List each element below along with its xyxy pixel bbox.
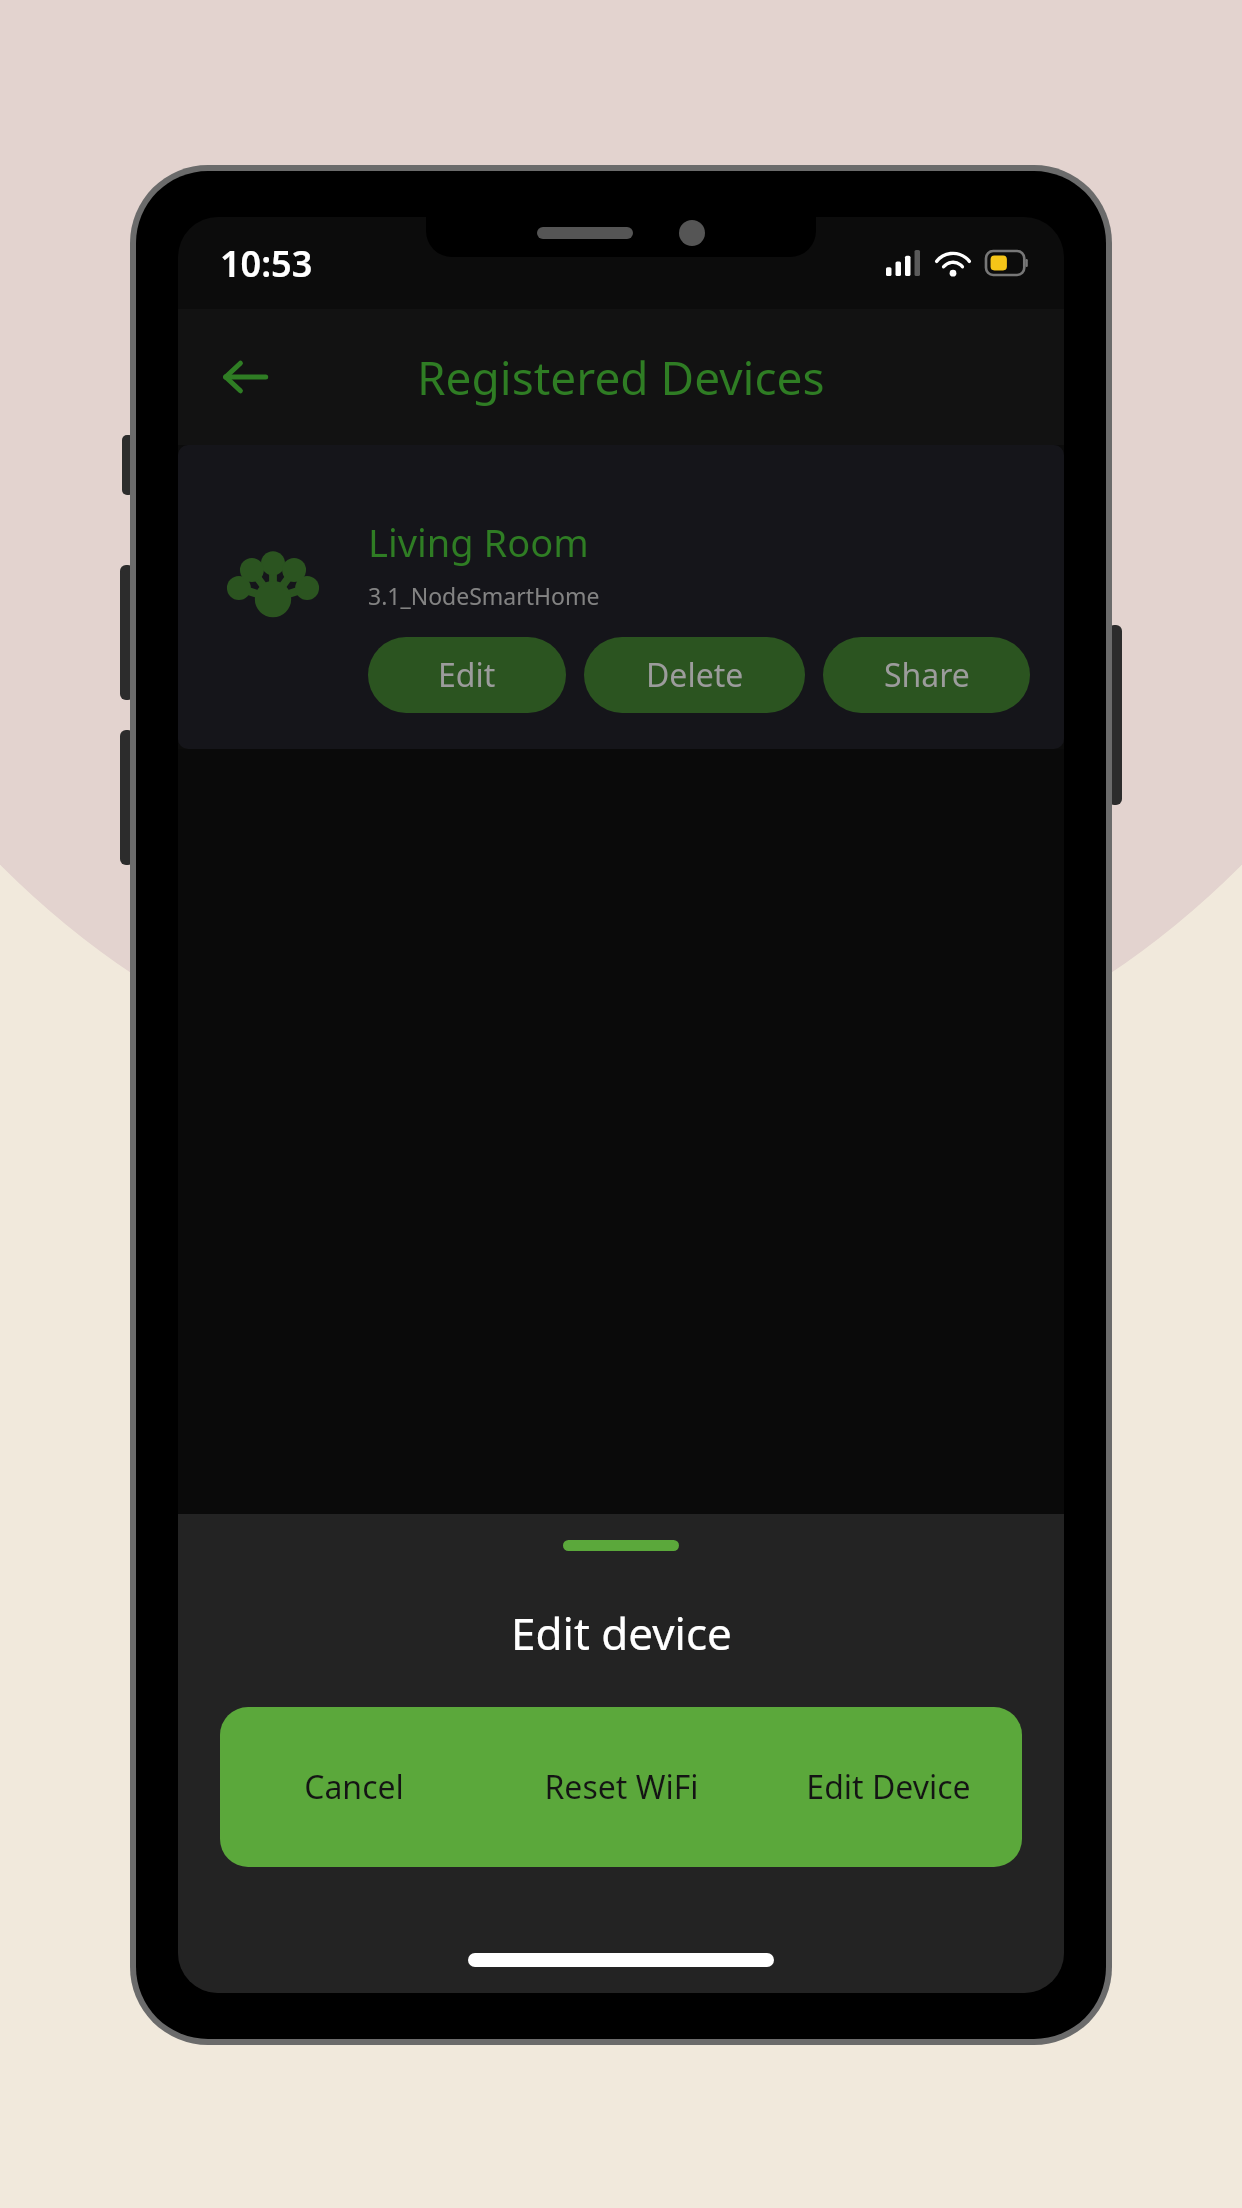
button[interactable]: Edit Device (755, 1707, 1022, 1867)
button[interactable]: Cancel (220, 1707, 488, 1867)
button[interactable]: Edit (368, 637, 566, 713)
staticText: Registered Devices (417, 346, 825, 409)
button[interactable]: Living Room (178, 445, 1064, 749)
staticText: Edit (438, 653, 496, 697)
staticText: Share (884, 653, 970, 697)
button[interactable]: Back (206, 338, 284, 416)
staticText: 10:53 (220, 239, 313, 288)
button[interactable]: Share (823, 637, 1030, 713)
staticText: Reset WiFi (544, 1765, 699, 1809)
staticText: Edit Device (806, 1765, 971, 1809)
button[interactable]: Delete (584, 637, 805, 713)
staticText: 3.1_NodeSmartHome (368, 580, 600, 611)
staticText: Living Room (368, 516, 589, 568)
staticText: Cancel (304, 1765, 404, 1809)
staticText: Edit device (511, 1603, 732, 1663)
button[interactable]: Reset WiFi (488, 1707, 755, 1867)
staticText: Delete (646, 653, 744, 697)
